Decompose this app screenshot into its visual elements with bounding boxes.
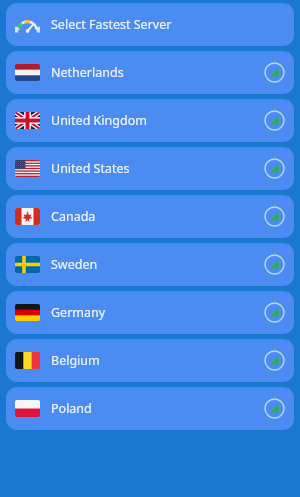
staticText: Netherlands <box>51 64 124 81</box>
staticText: Sweden <box>51 256 98 273</box>
button[interactable]: Poland <box>6 387 294 430</box>
staticText: Germany <box>51 304 106 321</box>
other: Connection quality <box>264 302 285 323</box>
staticText: Select Fastest Server <box>51 16 172 33</box>
button[interactable]: Netherlands <box>6 51 294 94</box>
staticText: Poland <box>51 400 92 417</box>
button[interactable]: Sweden <box>6 243 294 286</box>
staticText: Canada <box>51 208 96 225</box>
other: Connection quality <box>264 206 285 227</box>
button[interactable]: Canada <box>6 195 294 238</box>
button[interactable]: Belgium <box>6 339 294 382</box>
other: Connection quality <box>264 254 285 275</box>
button[interactable]: United States <box>6 147 294 190</box>
other: Connection quality <box>264 350 285 371</box>
staticText: United States <box>51 160 130 177</box>
staticText: Belgium <box>51 352 100 369</box>
other: Connection quality <box>264 398 285 419</box>
other: Connection quality <box>264 110 285 131</box>
other: Connection quality <box>264 158 285 179</box>
button[interactable]: United Kingdom <box>6 99 294 142</box>
other: Connection quality <box>264 62 285 83</box>
button[interactable]: Germany <box>6 291 294 334</box>
staticText: United Kingdom <box>51 112 147 129</box>
button[interactable]: Select Fastest Server <box>6 3 294 46</box>
